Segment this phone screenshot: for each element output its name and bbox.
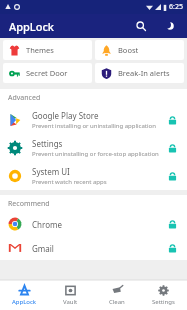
staticText: Prevent installing or uninstalling appli… xyxy=(32,122,156,130)
button[interactable]: Break-In alerts xyxy=(95,63,184,83)
staticText: Secret Door xyxy=(26,68,68,78)
button[interactable]: Secret Door xyxy=(3,63,92,83)
button[interactable]: Lock Chrome xyxy=(165,217,179,231)
staticText: Google Play Store xyxy=(32,110,99,121)
staticText: Prevent watch recent apps xyxy=(32,178,107,186)
staticText: Chrome xyxy=(32,219,62,230)
staticText: 6:25 xyxy=(169,2,183,12)
staticText: Vault xyxy=(63,298,78,306)
button[interactable]: Clean xyxy=(94,280,140,310)
staticText: Recommend xyxy=(8,199,50,209)
button[interactable]: Night mode xyxy=(161,17,179,35)
staticText: Themes xyxy=(26,45,54,55)
button[interactable]: Vault xyxy=(47,280,93,310)
staticText: Gmail xyxy=(32,243,54,254)
staticText: Prevent uninstalling or force-stop appli… xyxy=(32,150,159,158)
button[interactable]: Themes xyxy=(3,40,92,60)
button[interactable]: Chrome xyxy=(0,212,187,236)
button[interactable]: Lock Google Play Store xyxy=(165,113,179,127)
staticText: AppLock xyxy=(12,298,37,306)
staticText: Clean xyxy=(109,298,125,306)
button[interactable]: Boost xyxy=(95,40,184,60)
button[interactable]: Google Play Store xyxy=(0,106,187,134)
button[interactable]: AppLock xyxy=(1,280,47,310)
button[interactable]: Settings xyxy=(0,134,187,162)
staticText: Settings xyxy=(32,138,63,149)
staticText: Boost xyxy=(118,45,139,55)
button[interactable]: System UI xyxy=(0,162,187,190)
staticText: Settings xyxy=(152,298,175,306)
button[interactable]: Lock System UI xyxy=(165,169,179,183)
staticText: Break-In alerts xyxy=(118,68,170,78)
button[interactable]: Lock Gmail xyxy=(165,241,179,255)
staticText: System UI xyxy=(32,166,70,177)
staticText: AppLock xyxy=(9,19,54,34)
button[interactable]: Lock Settings xyxy=(165,141,179,155)
button[interactable]: Search xyxy=(132,17,150,35)
staticText: Advanced xyxy=(8,93,41,103)
button[interactable]: Gmail xyxy=(0,236,187,260)
button[interactable]: Settings xyxy=(140,280,186,310)
